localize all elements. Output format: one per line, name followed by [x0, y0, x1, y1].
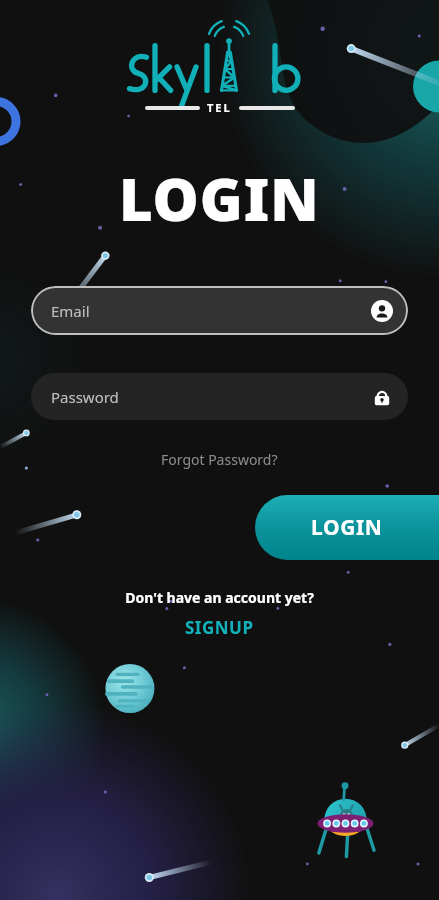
staticText: Password [51, 387, 119, 407]
staticText: Email [51, 301, 90, 321]
staticText: TEL [207, 100, 232, 115]
button[interactable]: Password [31, 373, 408, 420]
staticText: LOGIN [119, 159, 320, 238]
button[interactable]: SIGNUP [177, 614, 262, 641]
button[interactable]: Email [31, 286, 408, 335]
staticText: LOGIN [311, 513, 383, 542]
button[interactable]: LOGIN [255, 495, 439, 560]
staticText: Forgot Password? [161, 450, 278, 469]
button[interactable]: Forgot Password? [153, 447, 286, 472]
staticText: SIGNUP [185, 616, 254, 639]
staticText: Don't have an account yet? [125, 588, 314, 607]
